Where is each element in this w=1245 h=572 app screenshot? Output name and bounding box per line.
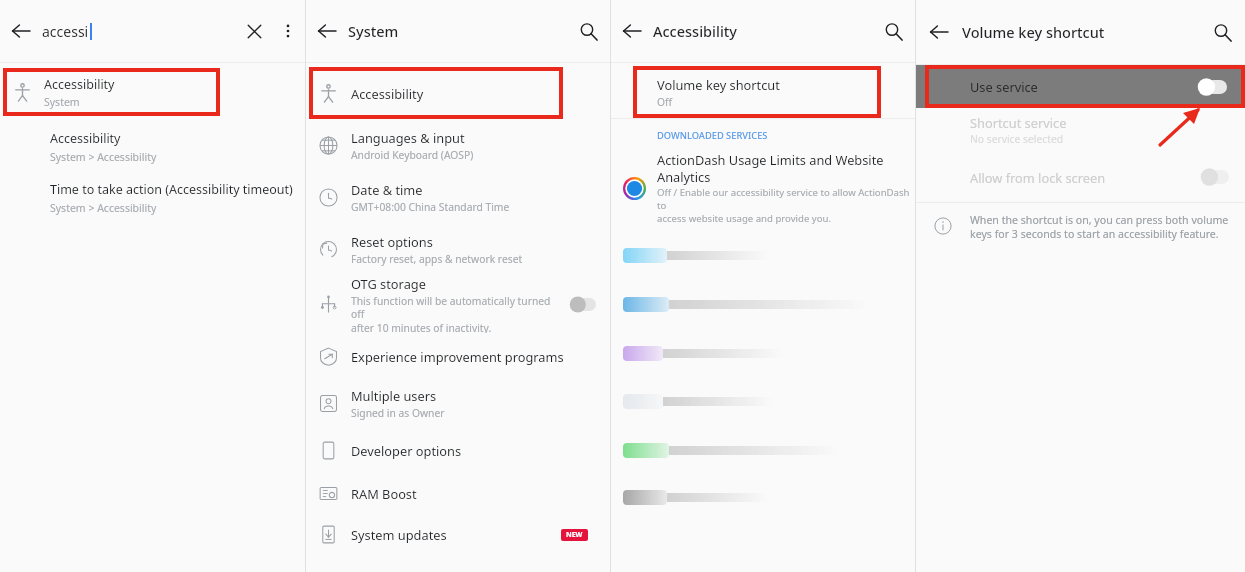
- button[interactable]: Clear: [237, 0, 271, 62]
- staticText: Accessibility: [653, 21, 738, 41]
- staticText: Date & time: [351, 181, 423, 198]
- staticText: Analytics: [657, 168, 711, 185]
- staticText: This function will be automatically turn…: [351, 294, 564, 321]
- button[interactable]: Use service: [916, 65, 1245, 108]
- staticText: When the shortcut is on, you can press b…: [970, 213, 1229, 227]
- staticText: NEW: [566, 530, 583, 540]
- button[interactable]: Back: [611, 0, 653, 62]
- button[interactable]: Developer options: [306, 427, 610, 473]
- button[interactable]: Accessibility: [306, 67, 610, 119]
- staticText: Off / Enable our accessibility service t…: [657, 186, 911, 212]
- button[interactable]: Accessibility: [0, 130, 305, 164]
- staticText: accessi: [42, 22, 89, 41]
- button[interactable]: Back: [916, 0, 962, 64]
- staticText: DOWNLOADED SERVICES: [657, 129, 768, 142]
- staticText: Accessibility: [44, 76, 115, 93]
- staticText: System updates: [351, 526, 447, 543]
- button[interactable]: Languages & input: [306, 119, 610, 171]
- staticText: Accessibility: [50, 130, 121, 147]
- staticText: Reset options: [351, 233, 433, 250]
- staticText: System > Accessibility: [50, 150, 157, 164]
- staticText: Shortcut service: [970, 114, 1067, 131]
- staticText: keys for 3 seconds to start an accessibi…: [970, 227, 1219, 241]
- staticText: Experience improvement programs: [351, 348, 564, 365]
- staticText: access website usage and provide you.: [657, 212, 832, 225]
- button[interactable]: Back: [306, 0, 348, 62]
- staticText: Factory reset, apps & network reset: [351, 252, 523, 266]
- staticText: OTG storage: [351, 275, 426, 292]
- button[interactable]: Search: [566, 0, 610, 62]
- staticText: Volume key shortcut: [962, 22, 1105, 42]
- staticText: after 10 minutes of inactivity.: [351, 321, 492, 333]
- staticText: Signed in as Owner: [351, 406, 445, 420]
- staticText: Use service: [970, 78, 1038, 95]
- staticText: System: [44, 95, 80, 109]
- other: Toggle: [1198, 80, 1227, 94]
- staticText: Volume key shortcut: [657, 76, 780, 93]
- staticText: Developer options: [351, 442, 462, 459]
- button[interactable]: Experience improvement programs: [306, 333, 610, 379]
- button[interactable]: Volume key shortcut: [611, 66, 915, 118]
- staticText: Languages & input: [351, 129, 465, 146]
- staticText: Accessibility: [351, 85, 424, 102]
- staticText: RAM Boost: [351, 485, 417, 502]
- button[interactable]: More options: [271, 0, 305, 62]
- other: Toggle: [1201, 170, 1229, 184]
- button[interactable]: Allow from lock screen: [916, 164, 1245, 190]
- staticText: Time to take action (Accessibility timeo…: [50, 181, 293, 198]
- staticText: No service selected: [970, 132, 1064, 146]
- button[interactable]: Multiple users: [306, 379, 610, 427]
- button[interactable]: Search: [1199, 0, 1245, 64]
- other: Toggle: [570, 298, 596, 311]
- staticText: Allow from lock screen: [970, 169, 1106, 186]
- staticText: System: [348, 21, 399, 41]
- button[interactable]: RAM Boost: [306, 473, 610, 514]
- button[interactable]: Time to take action (Accessibility timeo…: [0, 181, 305, 215]
- staticText: Android Keyboard (AOSP): [351, 148, 474, 162]
- staticText: System > Accessibility: [50, 201, 157, 215]
- button[interactable]: Shortcut service: [916, 114, 1245, 146]
- button[interactable]: Search: [871, 0, 915, 62]
- button[interactable]: Accessibility: [0, 68, 305, 116]
- button[interactable]: System updates: [306, 514, 610, 555]
- button[interactable]: Back: [0, 0, 42, 62]
- staticText: ActionDash Usage Limits and Website: [657, 151, 884, 168]
- button[interactable]: Date & time: [306, 171, 610, 223]
- button[interactable]: Reset options: [306, 223, 610, 275]
- staticText: Off: [657, 95, 673, 109]
- button[interactable]: ActionDash Usage Limits and Website: [611, 151, 915, 225]
- staticText: GMT+08:00 China Standard Time: [351, 200, 510, 214]
- staticText: Multiple users: [351, 387, 437, 404]
- button[interactable]: OTG storage: [306, 275, 610, 333]
